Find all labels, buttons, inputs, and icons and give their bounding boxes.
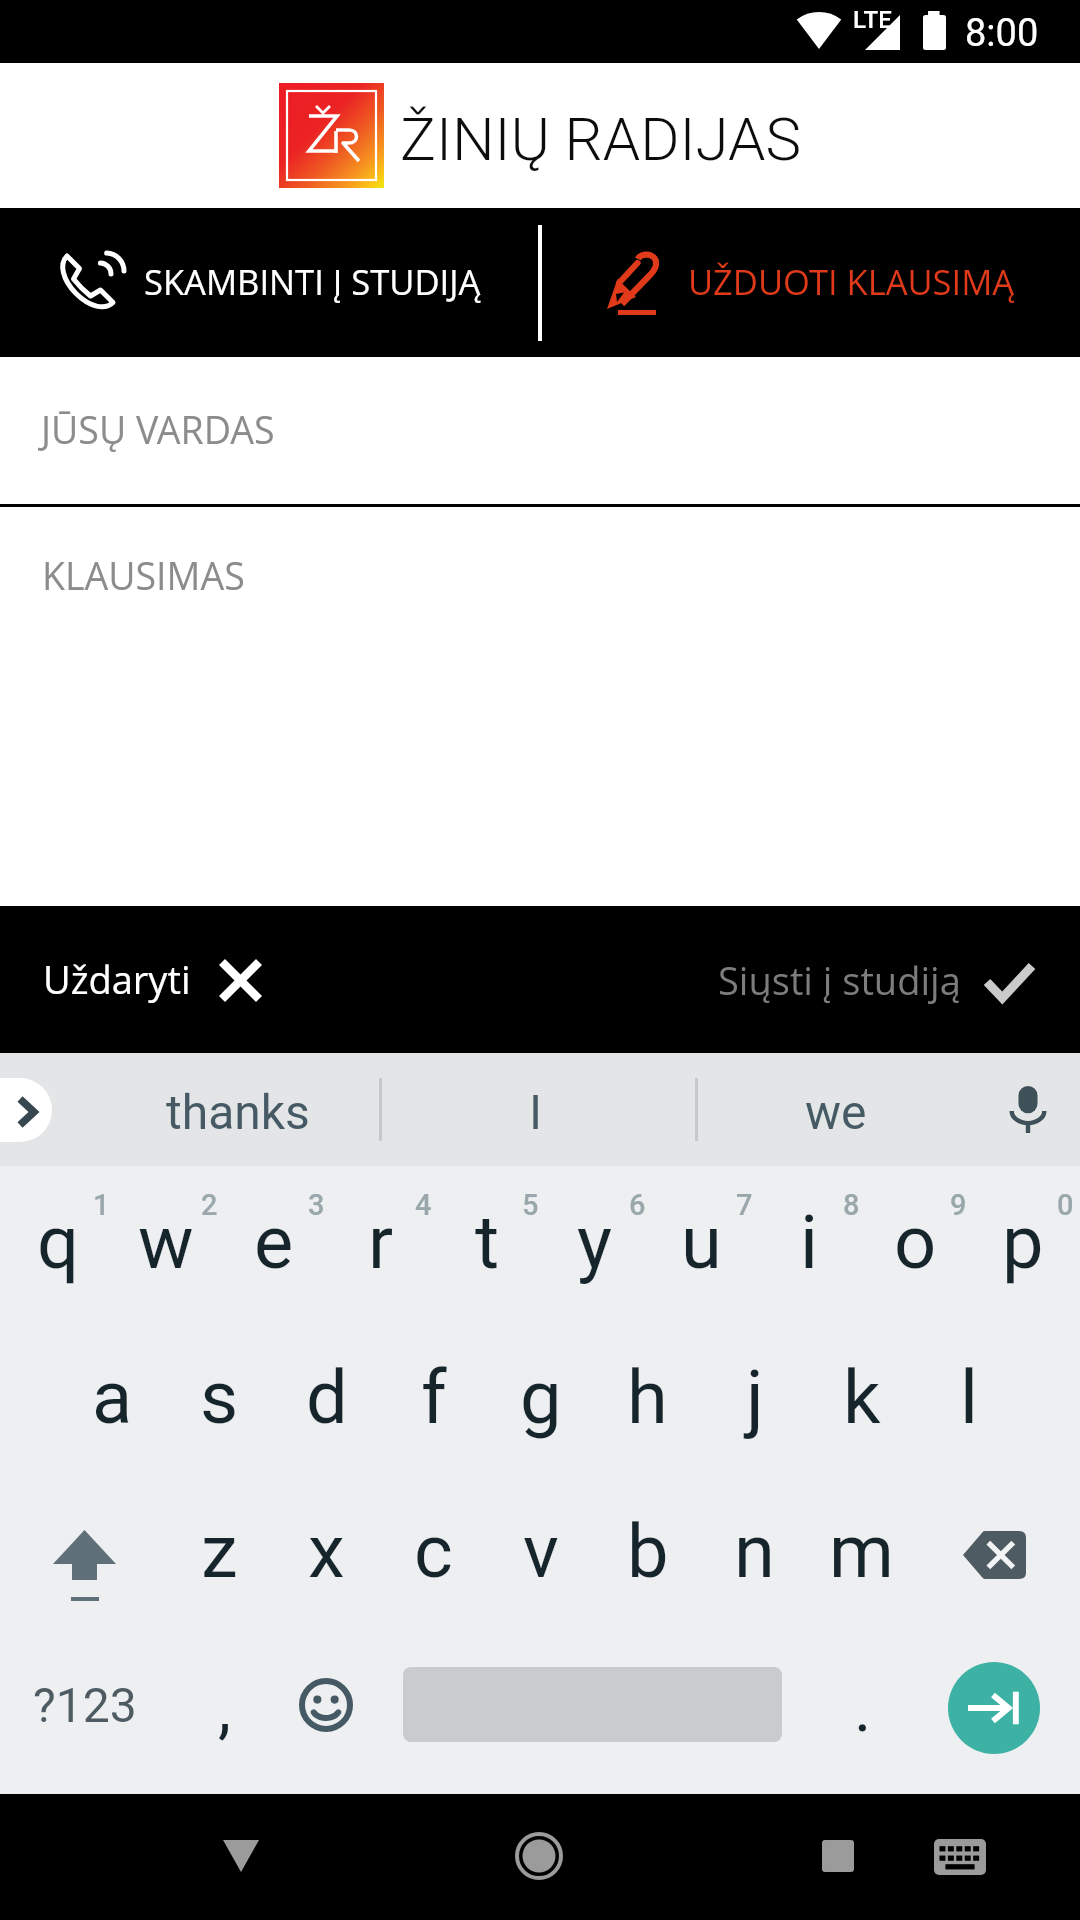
button[interactable]: thanks <box>78 1053 398 1166</box>
button[interactable]: n <box>701 1480 808 1637</box>
staticText: l <box>960 1354 978 1441</box>
button[interactable]: i <box>755 1166 862 1323</box>
staticText: k <box>843 1354 881 1441</box>
staticText: v <box>523 1508 559 1595</box>
staticText: ?123 <box>33 1677 137 1733</box>
button[interactable]: Recent apps <box>778 1810 898 1900</box>
button[interactable]: p <box>969 1166 1076 1323</box>
staticText: , <box>218 1670 231 1747</box>
button[interactable]: KLAUSIMAS <box>0 507 1080 906</box>
button[interactable]: we <box>702 1053 970 1166</box>
button[interactable]: e <box>220 1166 327 1323</box>
button[interactable]: r <box>327 1166 434 1323</box>
staticText: j <box>746 1354 764 1441</box>
staticText: m <box>829 1508 894 1595</box>
button[interactable]: Voice input <box>970 1053 1080 1166</box>
button[interactable]: q <box>4 1166 112 1323</box>
button[interactable]: u <box>648 1166 755 1323</box>
staticText: e <box>254 1199 294 1286</box>
button[interactable]: h <box>594 1323 701 1480</box>
button[interactable]: t <box>434 1166 541 1323</box>
button[interactable]: , <box>180 1637 286 1794</box>
button[interactable]: . <box>822 1637 922 1794</box>
button[interactable]: b <box>594 1480 701 1637</box>
staticText: KLAUSIMAS <box>42 550 245 601</box>
staticText: SKAMBINTI Į STUDIJĄ <box>144 258 481 305</box>
staticText: 0 <box>1057 1188 1074 1222</box>
button[interactable]: Space <box>366 1637 822 1794</box>
staticText: x <box>308 1508 345 1595</box>
staticText: q <box>37 1199 80 1286</box>
staticText: 3 <box>308 1188 325 1222</box>
staticText: 6 <box>629 1188 646 1222</box>
button[interactable]: Home <box>479 1810 599 1900</box>
staticText: Siųsti į studiją <box>718 954 961 1006</box>
staticText: i <box>800 1199 818 1286</box>
staticText: UŽDUOTI KLAUSIMĄ <box>688 258 1015 305</box>
button[interactable]: l <box>915 1323 1022 1480</box>
button[interactable]: o <box>862 1166 969 1323</box>
button[interactable]: Hide keyboard <box>900 1810 1020 1900</box>
button[interactable]: I <box>397 1053 674 1166</box>
button[interactable]: Siųsti į studiją <box>660 906 1080 1053</box>
staticText: w <box>138 1199 194 1286</box>
button[interactable]: SKAMBINTI Į STUDIJĄ <box>0 208 539 357</box>
staticText: f <box>421 1354 447 1441</box>
staticText: JŪSŲ VARDAS <box>41 404 275 455</box>
staticText: 4 <box>415 1188 432 1222</box>
staticText: a <box>92 1354 133 1441</box>
staticText: ŽINIŲ RADIJAS <box>400 104 801 174</box>
staticText: t <box>475 1199 500 1286</box>
button[interactable]: g <box>487 1323 594 1480</box>
button[interactable]: y <box>541 1166 648 1323</box>
button[interactable]: j <box>701 1323 808 1480</box>
staticText: d <box>306 1354 348 1441</box>
button[interactable]: f <box>380 1323 487 1480</box>
staticText: b <box>627 1508 669 1595</box>
staticText: I <box>529 1084 543 1140</box>
button[interactable]: x <box>273 1480 380 1637</box>
button[interactable]: Backspace <box>915 1480 1080 1637</box>
staticText: Uždaryti <box>43 953 191 1005</box>
button[interactable]: Back <box>181 1810 301 1900</box>
staticText: 8 <box>843 1188 860 1222</box>
button[interactable]: a <box>59 1323 166 1480</box>
staticText: o <box>894 1199 937 1286</box>
staticText: 9 <box>950 1188 967 1222</box>
staticText: u <box>681 1199 722 1286</box>
staticText: 1 <box>93 1188 110 1222</box>
button[interactable]: Uždaryti <box>0 906 290 1053</box>
button[interactable]: Expand suggestions <box>0 1078 52 1142</box>
button[interactable]: w <box>112 1166 220 1323</box>
staticText: s <box>200 1354 239 1441</box>
staticText: g <box>520 1354 562 1441</box>
staticText: r <box>368 1199 394 1286</box>
staticText: 8:00 <box>965 11 1039 56</box>
button[interactable]: v <box>487 1480 594 1637</box>
staticText: h <box>627 1354 668 1441</box>
button[interactable]: ?123 <box>0 1637 180 1794</box>
button[interactable]: JŪSŲ VARDAS <box>0 357 1080 504</box>
staticText: LTE <box>853 6 892 34</box>
button[interactable]: c <box>380 1480 487 1637</box>
staticText: c <box>414 1508 453 1595</box>
staticText: z <box>201 1508 238 1595</box>
button[interactable]: s <box>166 1323 273 1480</box>
staticText: . <box>854 1670 872 1747</box>
staticText: y <box>577 1199 613 1286</box>
staticText: thanks <box>166 1084 310 1140</box>
staticText: p <box>1002 1199 1044 1286</box>
button[interactable]: z <box>165 1480 273 1637</box>
button[interactable]: Enter <box>922 1637 1080 1794</box>
button[interactable]: k <box>808 1323 915 1480</box>
staticText: 5 <box>522 1188 539 1222</box>
button[interactable]: UŽDUOTI KLAUSIMĄ <box>542 208 1080 357</box>
button[interactable]: Emoji <box>286 1637 366 1794</box>
button[interactable]: Shift <box>0 1480 165 1637</box>
button[interactable]: m <box>808 1480 915 1637</box>
staticText: 7 <box>736 1188 753 1222</box>
staticText: n <box>734 1508 775 1595</box>
staticText: we <box>805 1084 867 1140</box>
staticText: 2 <box>201 1188 218 1222</box>
button[interactable]: d <box>273 1323 380 1480</box>
